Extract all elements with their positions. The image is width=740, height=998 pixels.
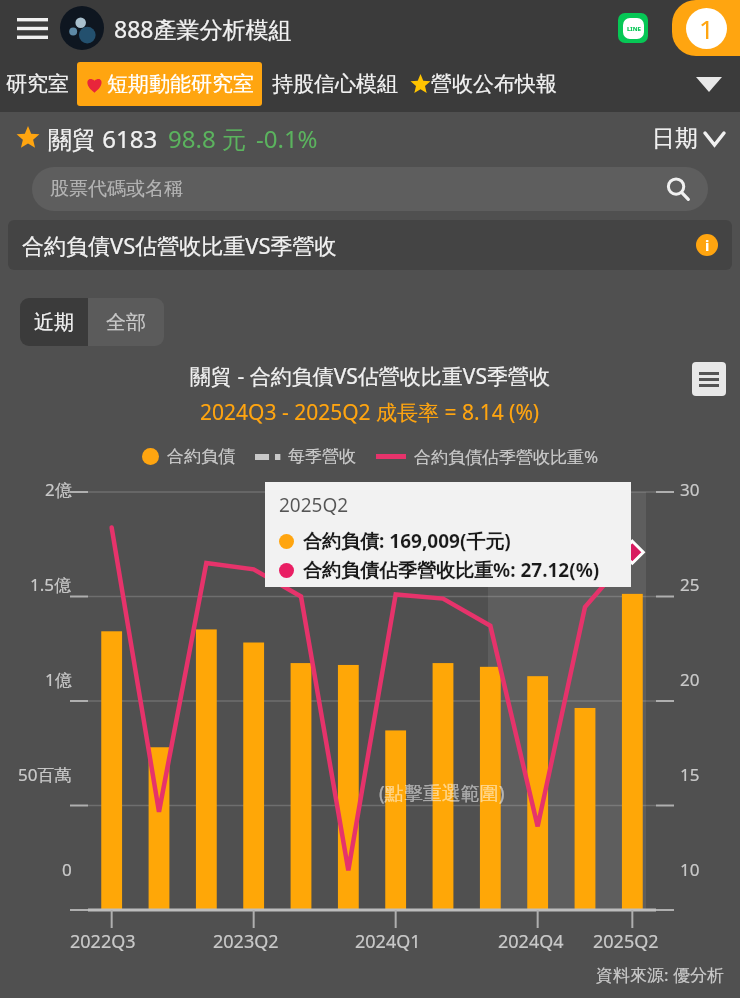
staticText: 50百萬 (18, 763, 72, 786)
button[interactable]: 營收公布快報 (410, 71, 557, 97)
staticText: 2025Q2 (279, 492, 349, 518)
staticText: 營收公布快報 (431, 71, 557, 97)
button[interactable]: 合約負債VS佔營收比重VS季營收 (8, 220, 732, 270)
staticText: 合約負債: 169,009(千元) (303, 528, 511, 554)
button[interactable]: 日期 (652, 124, 724, 153)
staticText: 1億 (45, 668, 72, 691)
staticText: 2025Q2 (593, 929, 659, 954)
staticText: 每季營收 (288, 446, 356, 467)
other: Info (696, 234, 718, 256)
button[interactable]: 股票代碼或名稱 (32, 167, 708, 211)
staticText: 1 (699, 11, 714, 46)
staticText: 近期 (34, 310, 74, 335)
staticText: 全部 (106, 310, 146, 335)
staticText: 合約負債VS佔營收比重VS季營收 (22, 230, 337, 260)
staticText: -0.1% (256, 122, 318, 155)
staticText: 2024Q3 - 2025Q2 成長率 = 8.14 (%) (200, 398, 540, 427)
button[interactable]: 持股信心模組 (272, 71, 398, 97)
staticText: i (705, 236, 710, 255)
staticText: 資料來源: 優分析 (596, 963, 724, 986)
staticText: 0 (62, 858, 72, 881)
button[interactable]: Menu (12, 8, 52, 48)
staticText: (點擊重選範圍) (379, 780, 505, 806)
staticText: 1.5億 (30, 573, 72, 596)
staticText: 合約負債佔季營收比重%: 27.12(%) (303, 557, 600, 583)
staticText: 關貿 6183 (48, 122, 158, 155)
staticText: 日期 (652, 124, 698, 153)
staticText: LINE (627, 25, 641, 33)
button[interactable]: More tabs (678, 56, 740, 112)
staticText: 2023Q2 (213, 929, 279, 954)
staticText: 98.8 元 (168, 122, 246, 155)
button[interactable]: Chart menu (692, 362, 726, 396)
staticText: 2022Q3 (70, 929, 136, 954)
button[interactable]: Notifications (672, 0, 740, 56)
button[interactable]: LINE (618, 13, 648, 43)
staticText: 10 (680, 858, 700, 881)
button[interactable]: 短期動能研究室 (77, 62, 262, 106)
staticText: 2億 (45, 478, 72, 501)
button[interactable]: 全部 (88, 298, 164, 346)
staticText: 30 (680, 478, 700, 501)
staticText: 短期動能研究室 (107, 71, 254, 97)
staticText: 20 (680, 668, 700, 691)
staticText: 2024Q1 (355, 929, 421, 954)
staticText: 合約負債 (167, 446, 235, 467)
staticText: 2024Q4 (498, 929, 564, 954)
staticText: 25 (680, 573, 700, 596)
staticText: 888產業分析模組 (114, 13, 292, 44)
staticText: 持股信心模組 (272, 71, 398, 97)
button[interactable]: 近期 (20, 298, 88, 346)
staticText: 研究室 (6, 71, 69, 97)
staticText: 關貿 - 合約負債VS佔營收比重VS季營收 (190, 362, 550, 391)
staticText: 合約負債佔季營收比重% (414, 445, 599, 468)
staticText: 股票代碼或名稱 (50, 177, 183, 201)
button[interactable]: 研究室 (0, 71, 75, 97)
staticText: 15 (680, 763, 700, 786)
